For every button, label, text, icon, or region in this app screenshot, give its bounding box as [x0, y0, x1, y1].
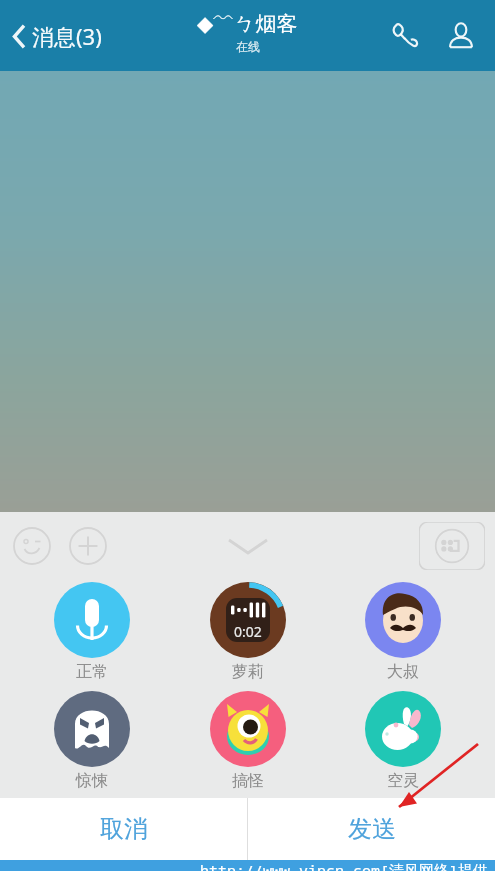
staticText: 消息(3): [32, 21, 102, 51]
button[interactable]: Keyboard: [419, 522, 485, 570]
button[interactable]: 消息(3): [4, 13, 110, 59]
button[interactable]: 大叔: [339, 582, 467, 682]
staticText: 萝莉: [232, 662, 264, 682]
button[interactable]: 发送: [248, 798, 495, 860]
button[interactable]: 正常: [28, 582, 156, 682]
staticText: 空灵: [387, 771, 419, 791]
staticText: 大叔: [387, 662, 419, 682]
button[interactable]: Emoji: [6, 520, 58, 572]
button[interactable]: 取消: [0, 798, 247, 860]
staticText: 0:02: [234, 622, 262, 641]
button[interactable]: Collapse panel: [213, 522, 283, 570]
staticText: 搞怪: [232, 771, 264, 791]
staticText: ◆﹋ㄅ烟客: [197, 11, 298, 37]
button[interactable]: 搞怪: [184, 691, 312, 791]
staticText: 发送: [348, 814, 396, 844]
button[interactable]: 空灵: [339, 691, 467, 791]
button[interactable]: 惊悚: [28, 691, 156, 791]
staticText: 在线: [236, 39, 260, 54]
button[interactable]: Add: [62, 520, 114, 572]
staticText: http://www.vipcn.com[清风网络]提供: [200, 860, 489, 871]
button[interactable]: Profile: [435, 10, 487, 62]
button[interactable]: Call: [379, 10, 431, 62]
staticText: 取消: [100, 814, 148, 844]
staticText: 正常: [76, 662, 108, 682]
button[interactable]: 0:02: [184, 582, 312, 682]
staticText: 惊悚: [76, 771, 108, 791]
